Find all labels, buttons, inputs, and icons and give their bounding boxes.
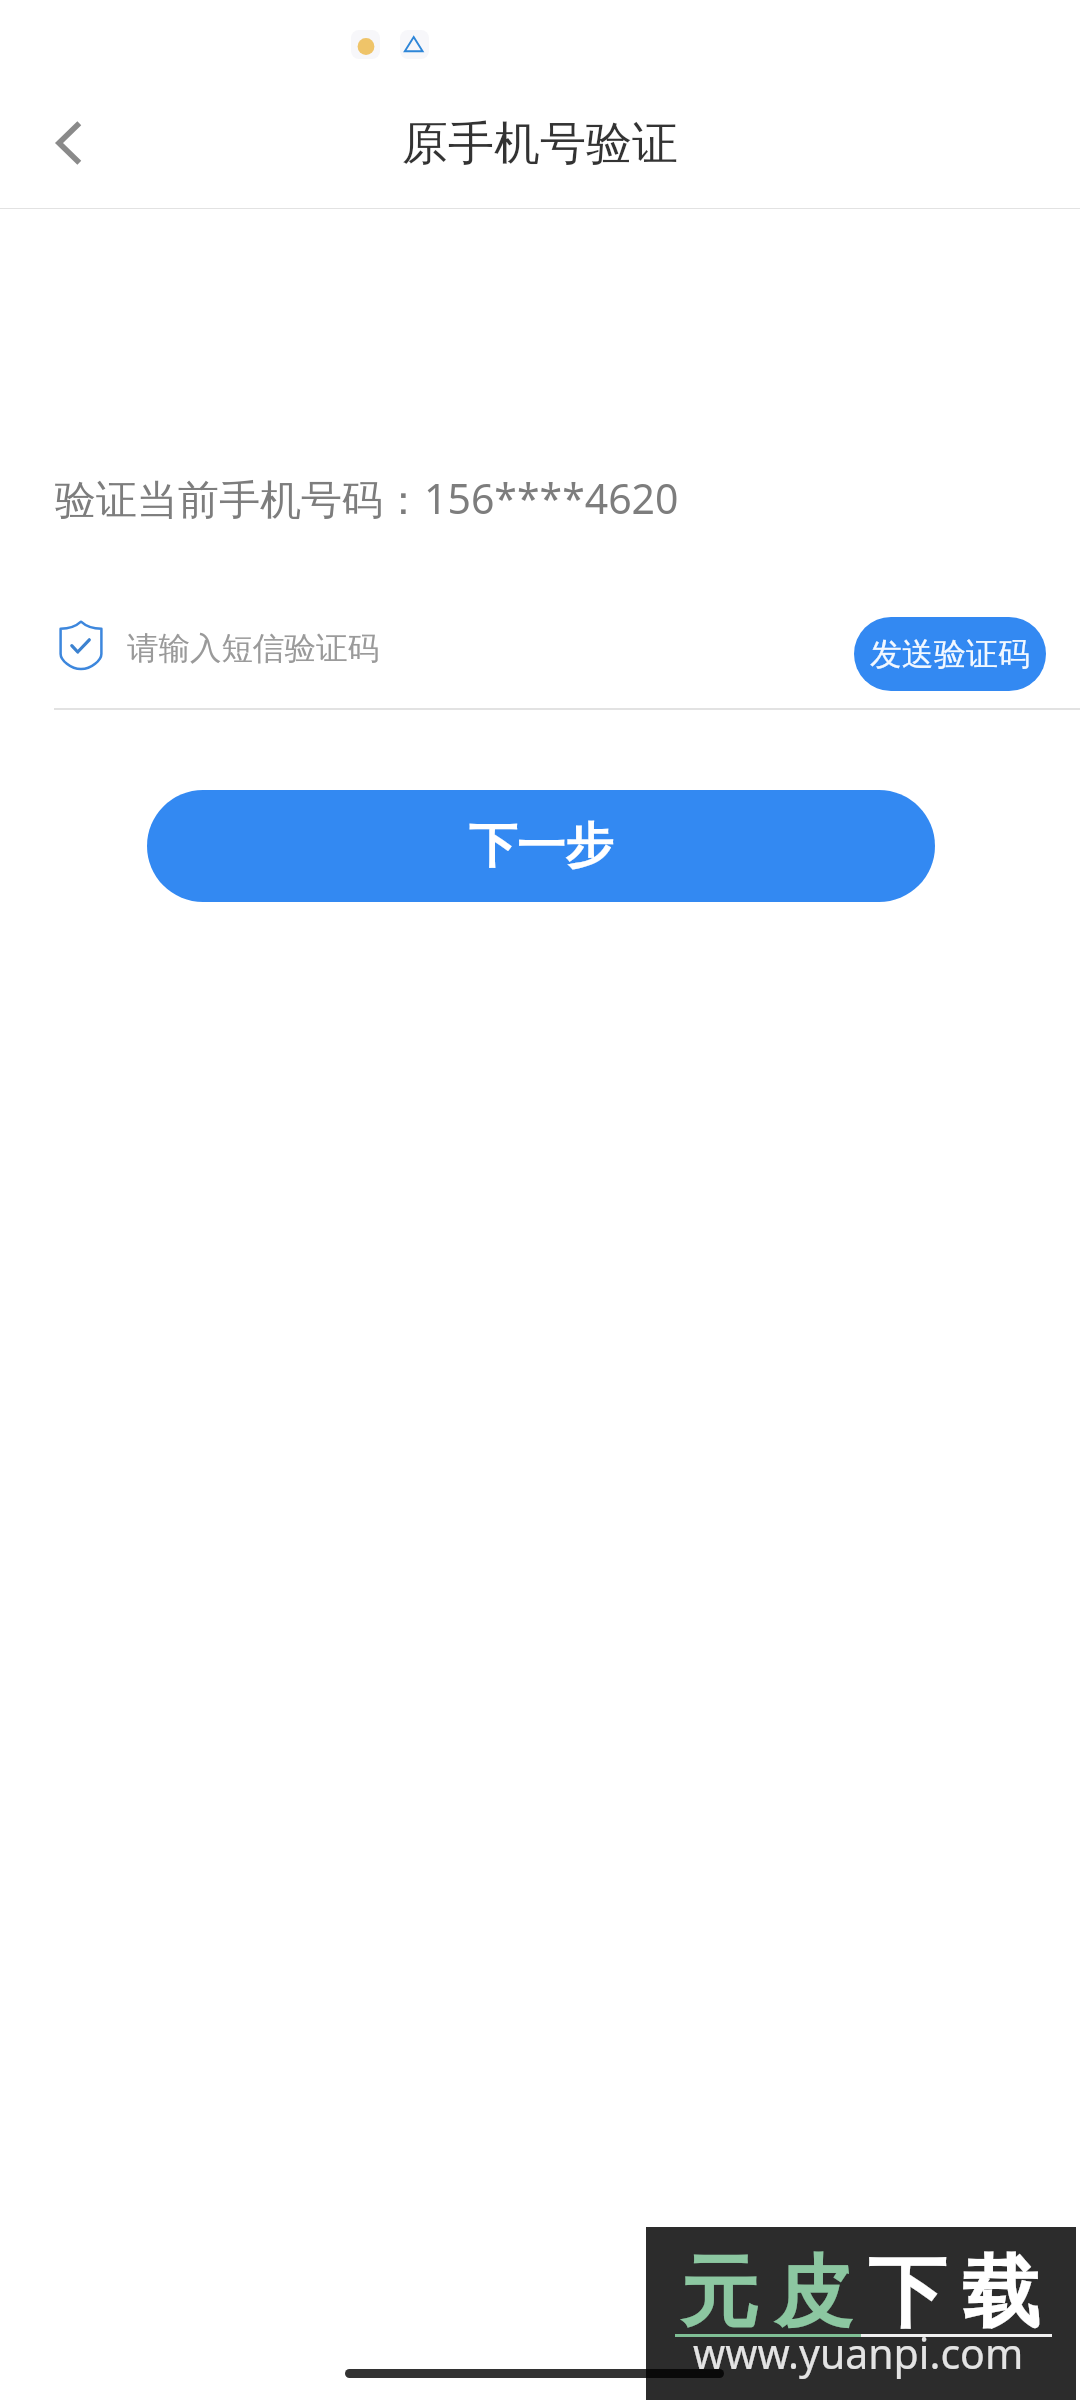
button[interactable]: 下一步 [147, 790, 935, 902]
button[interactable]: Back [18, 94, 120, 192]
button[interactable]: 发送验证码 [854, 617, 1046, 691]
staticText: 请输入短信验证码 [127, 629, 379, 669]
staticText: 元皮 [672, 2244, 860, 2342]
staticText: 验证当前手机号码：156****4620 [55, 470, 679, 526]
staticText: 下载 [860, 2244, 1048, 2342]
staticText: 原手机号验证 [0, 115, 1080, 173]
staticText: 下一步 [469, 816, 613, 876]
staticText: 发送验证码 [870, 634, 1030, 674]
staticText: www.yuanpi.com [693, 2325, 1024, 2381]
